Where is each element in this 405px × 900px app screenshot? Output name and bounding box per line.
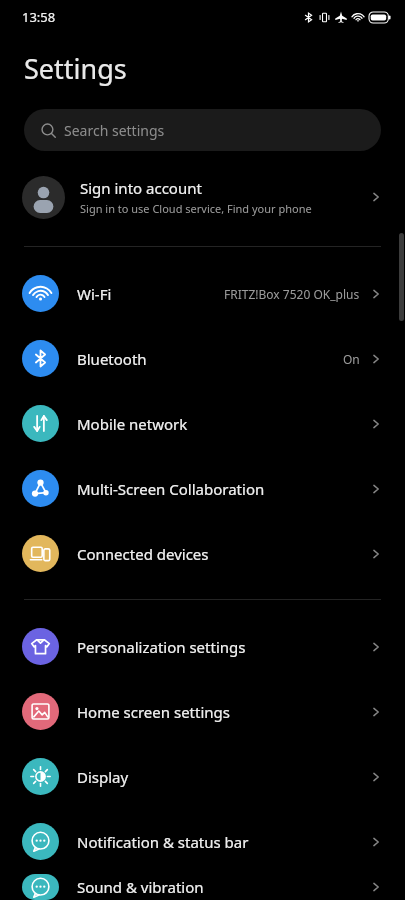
staticText: Wi-Fi bbox=[77, 284, 224, 304]
button[interactable]: Multi-Screen Collaboration bbox=[0, 456, 405, 521]
button[interactable]: Search settings bbox=[24, 109, 381, 151]
button[interactable]: Personalization settings bbox=[0, 614, 405, 679]
staticText: Multi-Screen Collaboration bbox=[77, 479, 369, 499]
staticText: Personalization settings bbox=[77, 637, 369, 657]
button[interactable]: Wi-Fi bbox=[0, 261, 405, 326]
staticText: 13:58 bbox=[22, 8, 56, 26]
button[interactable]: Bluetooth bbox=[0, 326, 405, 391]
staticText: Settings bbox=[24, 50, 127, 87]
staticText: Bluetooth bbox=[77, 349, 343, 369]
staticText: Sign into account bbox=[80, 178, 202, 198]
button[interactable]: Notification & status bar bbox=[0, 809, 405, 874]
staticText: Display bbox=[77, 767, 369, 787]
staticText: Sign in to use Cloud service, Find your … bbox=[80, 201, 312, 216]
staticText: Home screen settings bbox=[77, 702, 369, 722]
button[interactable]: Home screen settings bbox=[0, 679, 405, 744]
staticText: Mobile network bbox=[77, 414, 369, 434]
button[interactable]: Mobile network bbox=[0, 391, 405, 456]
staticText: Sound & vibration bbox=[77, 877, 369, 897]
staticText: FRITZ!Box 7520 OK_plus bbox=[224, 286, 360, 302]
staticText: Notification & status bar bbox=[77, 832, 369, 852]
staticText: Connected devices bbox=[77, 544, 369, 564]
button[interactable]: Display bbox=[0, 744, 405, 809]
button[interactable]: Sign into account bbox=[0, 166, 405, 228]
button[interactable]: Sound & vibration bbox=[0, 874, 405, 900]
button[interactable]: Connected devices bbox=[0, 521, 405, 586]
staticText: Search settings bbox=[64, 121, 165, 140]
staticText: On bbox=[343, 351, 360, 367]
